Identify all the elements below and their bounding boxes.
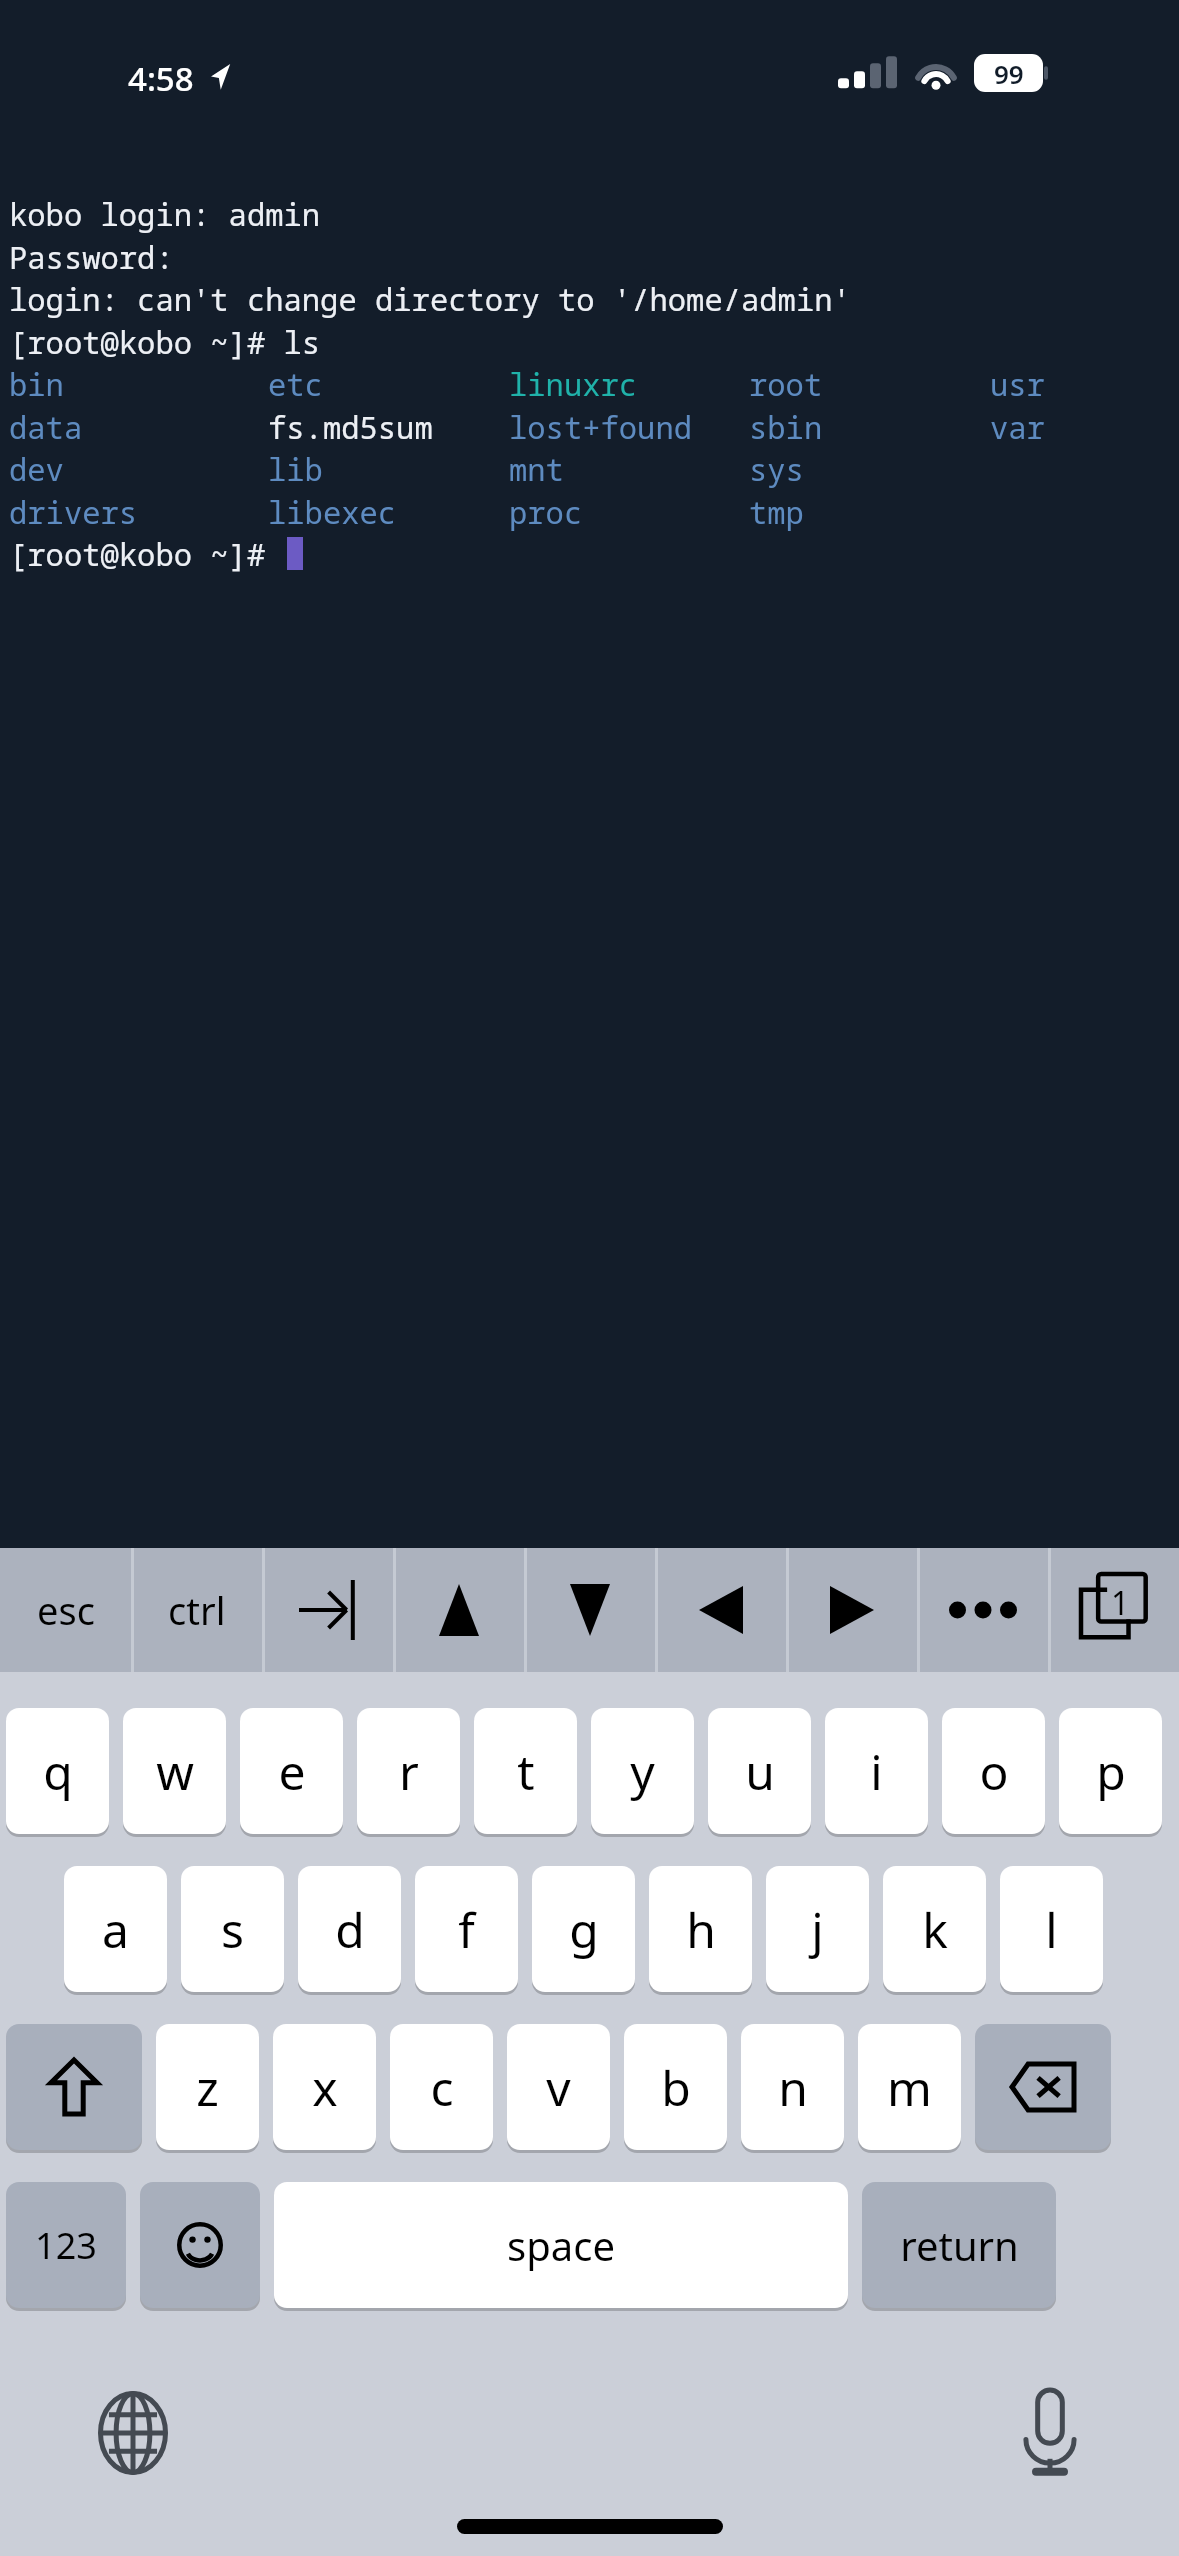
button[interactable]: n [741, 2024, 844, 2150]
staticText: root [749, 363, 823, 405]
button[interactable]: o [942, 1708, 1045, 1834]
staticText: 4:58 [128, 56, 194, 101]
button[interactable]: b [624, 2024, 727, 2150]
staticText: login: can't change directory to '/home/… [9, 278, 851, 320]
button[interactable]: w [123, 1708, 226, 1834]
button[interactable]: Emoji [140, 2182, 260, 2308]
button[interactable]: d [298, 1866, 401, 1992]
staticText: kobo login: admin [9, 193, 321, 235]
button[interactable]: ctrl [131, 1548, 262, 1672]
staticText: bin [9, 363, 64, 405]
staticText: data [9, 406, 83, 448]
button[interactable]: Backspace [975, 2024, 1111, 2150]
staticText: l [1045, 1897, 1058, 1962]
staticText: drivers [9, 491, 138, 533]
button[interactable]: h [649, 1866, 752, 1992]
button[interactable]: a [64, 1866, 167, 1992]
staticText: v [546, 2055, 571, 2120]
button[interactable]: esc [0, 1548, 131, 1672]
button[interactable]: r [357, 1708, 460, 1834]
button[interactable]: g [532, 1866, 635, 1992]
staticText: j [811, 1897, 824, 1962]
button[interactable]: p [1059, 1708, 1162, 1834]
button[interactable]: y [591, 1708, 694, 1834]
staticText: 123 [35, 2221, 97, 2270]
staticText: lost+found [509, 406, 692, 448]
staticText: ctrl [168, 1584, 226, 1636]
staticText: lib [268, 448, 323, 490]
staticText: usr [990, 363, 1045, 405]
staticText: p [1096, 1739, 1126, 1804]
button[interactable]: 123 [6, 2182, 126, 2308]
staticText: t [517, 1739, 535, 1804]
staticText: b [661, 2055, 691, 2120]
staticText: q [43, 1739, 73, 1804]
button[interactable]: Arrow up [393, 1548, 524, 1672]
staticText: o [979, 1739, 1009, 1804]
staticText: x [312, 2055, 338, 2120]
button[interactable]: e [240, 1708, 343, 1834]
staticText: z [196, 2055, 219, 2120]
button[interactable]: j [766, 1866, 869, 1992]
staticText: m [887, 2055, 932, 2120]
button[interactable]: Change keyboard language [78, 2378, 188, 2488]
staticText: 1 [1111, 1581, 1130, 1625]
staticText: a [102, 1897, 129, 1962]
staticText: s [221, 1897, 244, 1962]
staticText: var [990, 406, 1045, 448]
staticText: space [507, 2218, 615, 2272]
staticText: f [458, 1897, 475, 1962]
staticText: c [430, 2055, 454, 2120]
button[interactable]: k [883, 1866, 986, 1992]
button[interactable]: l [1000, 1866, 1103, 1992]
staticText: sbin [749, 406, 823, 448]
staticText: y [630, 1739, 655, 1804]
staticText: n [778, 2055, 808, 2120]
button[interactable]: More [917, 1548, 1048, 1672]
staticText: tmp [749, 491, 804, 533]
staticText: dev [9, 448, 64, 490]
button[interactable]: x [273, 2024, 376, 2150]
button[interactable]: m [858, 2024, 961, 2150]
staticText: etc [268, 363, 323, 405]
staticText: [root@kobo ~]# ls [9, 321, 321, 363]
staticText: mnt [509, 448, 564, 490]
button[interactable]: s [181, 1866, 284, 1992]
staticText: libexec [268, 491, 397, 533]
button[interactable]: q [6, 1708, 109, 1834]
staticText: sys [749, 448, 804, 490]
staticText: e [278, 1739, 306, 1804]
staticText: i [870, 1739, 883, 1804]
staticText: Password: [9, 236, 174, 278]
staticText: h [686, 1897, 716, 1962]
button[interactable]: f [415, 1866, 518, 1992]
staticText: proc [509, 491, 583, 533]
staticText: return [900, 2218, 1019, 2272]
button[interactable]: Dictation [995, 2378, 1105, 2488]
staticText: g [569, 1897, 599, 1962]
staticText: linuxrc [509, 363, 638, 405]
button[interactable]: t [474, 1708, 577, 1834]
button[interactable]: u [708, 1708, 811, 1834]
button[interactable]: space [274, 2182, 848, 2308]
staticText: 99 [994, 56, 1024, 91]
button[interactable]: i [825, 1708, 928, 1834]
button[interactable]: Arrow right [786, 1548, 917, 1672]
staticText: fs.md5sum [268, 406, 433, 448]
button[interactable]: c [390, 2024, 493, 2150]
staticText: r [399, 1739, 419, 1804]
staticText: u [745, 1739, 775, 1804]
button[interactable]: Tab [262, 1548, 393, 1672]
button[interactable]: Tabs [1048, 1548, 1179, 1672]
staticText: [root@kobo ~]# [9, 533, 284, 575]
button[interactable]: return [862, 2182, 1056, 2308]
staticText: d [335, 1897, 365, 1962]
button[interactable]: v [507, 2024, 610, 2150]
staticText: k [922, 1897, 948, 1962]
button[interactable]: Arrow down [524, 1548, 655, 1672]
button[interactable]: Shift [6, 2024, 142, 2150]
button[interactable]: Arrow left [655, 1548, 786, 1672]
staticText: w [156, 1739, 194, 1804]
staticText: esc [37, 1584, 95, 1636]
button[interactable]: z [156, 2024, 259, 2150]
